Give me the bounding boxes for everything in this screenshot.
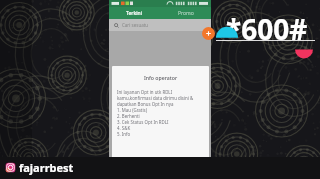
staticText: *600#	[226, 10, 308, 48]
staticText: Promo	[178, 10, 194, 17]
staticText: 4. S&K	[117, 125, 131, 131]
staticText: dapatkan Bonus Opt In nya	[117, 101, 174, 107]
button[interactable]: Compose	[202, 27, 215, 40]
staticText: Ini layanan Opt in utk RDLI	[117, 89, 173, 95]
button[interactable]: Terkini	[109, 7, 160, 19]
staticText: Cari sesuatu	[122, 22, 149, 28]
button[interactable]: Cari sesuatu	[109, 19, 211, 31]
staticText: 1. Mau (Gratis)	[117, 107, 147, 113]
staticText: 3. Cek Status Opt In RDLI	[117, 119, 169, 125]
staticText: 5. Info	[117, 131, 131, 137]
staticText: 2. Berhenti	[117, 113, 140, 119]
button[interactable]: Instagram	[5, 160, 74, 175]
other: Instagram	[5, 162, 16, 173]
staticText: kamu,konfirmasi data dirimu disini &	[117, 95, 194, 101]
staticText: Terkini	[126, 10, 143, 17]
button[interactable]	[118, 150, 203, 158]
button[interactable]: Promo	[160, 7, 211, 19]
staticText: Info operator	[112, 74, 209, 81]
staticText: fajarrbest	[19, 160, 74, 175]
